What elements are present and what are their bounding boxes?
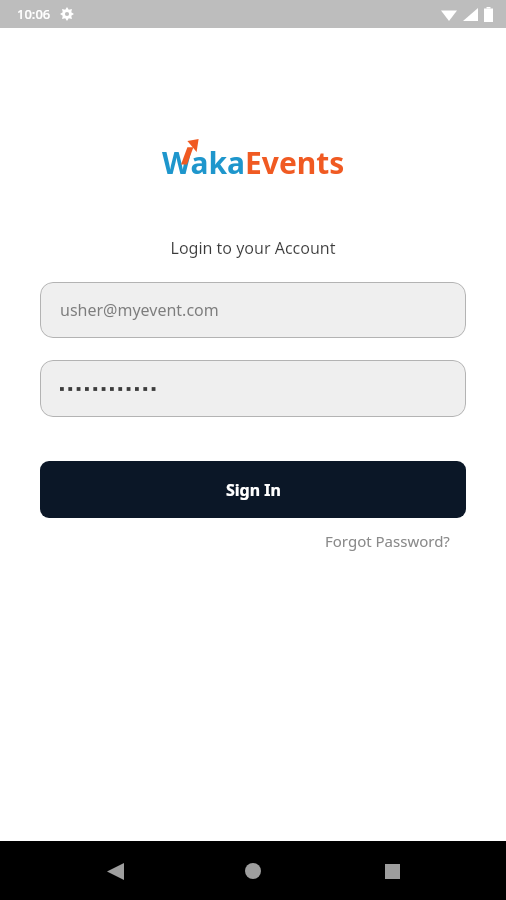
staticText: Waka <box>162 142 245 183</box>
staticText: Events <box>245 142 345 183</box>
button[interactable]: Forgot Password? <box>325 531 450 551</box>
staticText: Sign In <box>226 479 281 501</box>
button[interactable]: Back <box>91 847 139 895</box>
button[interactable]: Recent apps <box>368 847 416 895</box>
button[interactable]: Sign In <box>40 461 466 518</box>
staticText: 10:06 <box>17 5 51 23</box>
button[interactable]: Home <box>229 847 277 895</box>
staticText: Forgot Password? <box>325 531 450 551</box>
button[interactable]: usher@myevent.com <box>40 282 466 338</box>
button[interactable] <box>40 360 466 417</box>
staticText: Login to your Account <box>0 237 506 259</box>
staticText: usher@myevent.com <box>60 299 219 321</box>
